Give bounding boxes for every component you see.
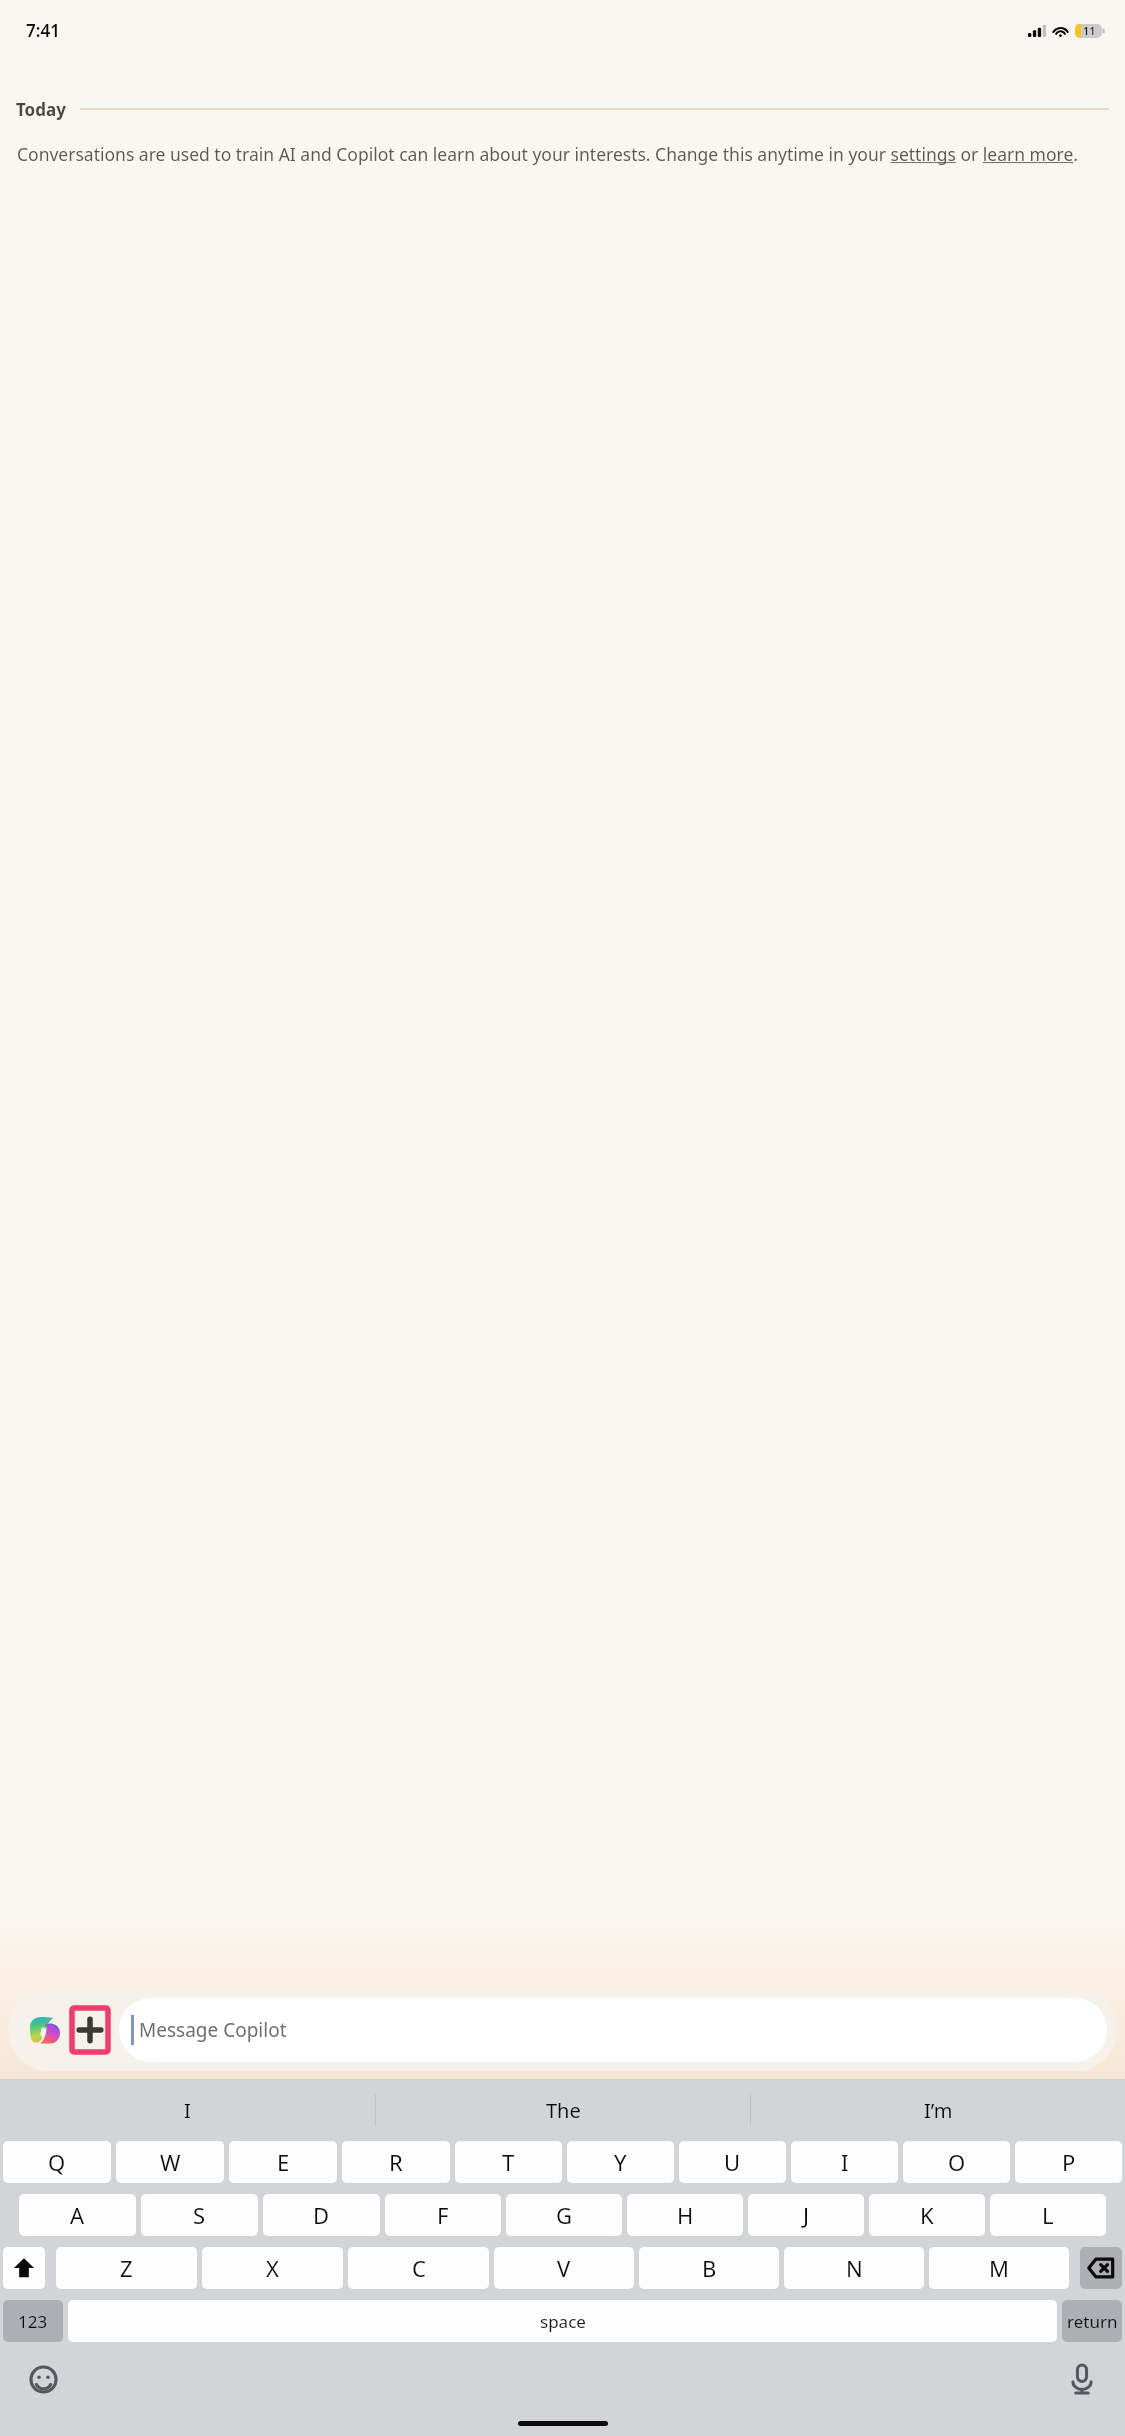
- staticText: L: [1042, 2200, 1054, 2230]
- button[interactable]: L: [990, 2194, 1106, 2236]
- button[interactable]: Message Copilot: [119, 1998, 1107, 2062]
- button[interactable]: Backspace: [1080, 2247, 1122, 2289]
- button[interactable]: V: [494, 2247, 634, 2289]
- staticText: F: [437, 2200, 449, 2230]
- staticText: The: [546, 2097, 581, 2124]
- staticText: Z: [120, 2253, 133, 2283]
- button[interactable]: W: [116, 2141, 224, 2183]
- staticText: P: [1062, 2147, 1076, 2177]
- button[interactable]: E: [229, 2141, 337, 2183]
- button[interactable]: J: [748, 2194, 864, 2236]
- button[interactable]: I: [791, 2141, 898, 2183]
- staticText: M: [989, 2253, 1009, 2283]
- staticText: return: [1067, 2310, 1118, 2333]
- button[interactable]: U: [679, 2141, 786, 2183]
- button[interactable]: P: [1015, 2141, 1122, 2183]
- button[interactable]: 123: [3, 2300, 63, 2342]
- button[interactable]: H: [627, 2194, 743, 2236]
- button[interactable]: T: [455, 2141, 562, 2183]
- button[interactable]: I’m: [751, 2079, 1125, 2141]
- button[interactable]: S: [141, 2194, 258, 2236]
- staticText: A: [70, 2200, 85, 2230]
- button[interactable]: return: [1062, 2300, 1122, 2342]
- button[interactable]: The: [376, 2079, 750, 2141]
- button[interactable]: O: [903, 2141, 1010, 2183]
- staticText: U: [724, 2147, 741, 2177]
- button[interactable]: A: [19, 2194, 136, 2236]
- staticText: C: [412, 2253, 426, 2283]
- staticText: R: [389, 2147, 403, 2177]
- button[interactable]: Q: [3, 2141, 111, 2183]
- button[interactable]: Copilot: [22, 2007, 68, 2053]
- button[interactable]: F: [385, 2194, 501, 2236]
- button[interactable]: space: [68, 2300, 1057, 2342]
- staticText: 7:41: [26, 19, 60, 42]
- button[interactable]: X: [202, 2247, 343, 2289]
- staticText: T: [502, 2147, 515, 2177]
- staticText: Conversations are used to train AI and C…: [17, 142, 1108, 166]
- button[interactable]: N: [784, 2247, 924, 2289]
- button[interactable]: K: [869, 2194, 985, 2236]
- staticText: Q: [48, 2147, 66, 2177]
- button[interactable]: C: [348, 2247, 489, 2289]
- staticText: E: [277, 2147, 290, 2177]
- button[interactable]: Z: [56, 2247, 197, 2289]
- button[interactable]: Emoji: [22, 2358, 64, 2400]
- button[interactable]: I: [0, 2079, 375, 2141]
- staticText: H: [677, 2200, 694, 2230]
- button[interactable]: B: [639, 2247, 779, 2289]
- button[interactable]: Add attachment: [72, 2008, 108, 2052]
- staticText: Message Copilot: [139, 2017, 287, 2043]
- staticText: I’m: [924, 2097, 953, 2124]
- staticText: space: [540, 2310, 586, 2333]
- staticText: J: [803, 2200, 810, 2230]
- staticText: 11: [1083, 23, 1096, 38]
- button[interactable]: Shift: [3, 2247, 45, 2289]
- staticText: G: [556, 2200, 573, 2230]
- button[interactable]: D: [263, 2194, 380, 2236]
- staticText: V: [557, 2253, 571, 2283]
- staticText: 123: [18, 2310, 48, 2333]
- button[interactable]: R: [342, 2141, 450, 2183]
- staticText: Today: [16, 98, 66, 120]
- button[interactable]: Dictate: [1061, 2358, 1103, 2400]
- button[interactable]: M: [929, 2247, 1069, 2289]
- staticText: Y: [614, 2147, 627, 2177]
- staticText: X: [266, 2253, 279, 2283]
- staticText: K: [920, 2200, 934, 2230]
- staticText: S: [193, 2200, 206, 2230]
- staticText: B: [702, 2253, 717, 2283]
- button[interactable]: Y: [567, 2141, 674, 2183]
- staticText: D: [313, 2200, 330, 2230]
- button[interactable]: G: [506, 2194, 622, 2236]
- staticText: N: [846, 2253, 863, 2283]
- staticText: O: [948, 2147, 966, 2177]
- staticText: W: [160, 2147, 181, 2177]
- staticText: I: [841, 2147, 849, 2177]
- staticText: I: [184, 2097, 191, 2124]
